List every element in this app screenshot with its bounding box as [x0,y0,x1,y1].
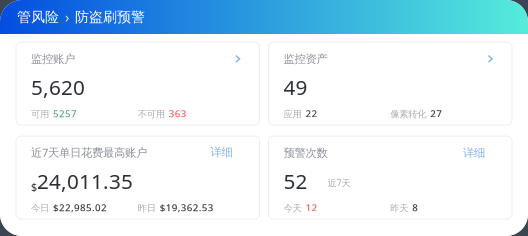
staticText: 12 [305,201,317,214]
staticText: 预警次数 [283,146,327,160]
staticText: 5257 [53,107,77,120]
staticText: 详细 [210,145,232,159]
staticText: 详细 [463,146,485,160]
button[interactable]: 管风险 [17,8,59,26]
staticText: 8 [412,201,418,214]
staticText: 今天 [283,202,301,214]
staticText: 监控资产 [283,52,327,66]
staticText: $22,985.02 [53,201,107,214]
staticText: 不可用 [138,108,165,120]
staticText: › [65,7,69,27]
staticText: 昨天 [390,202,408,214]
staticText: 52 [283,167,307,195]
staticText: 今日 [31,202,49,214]
staticText: 5,620 [31,73,85,101]
staticText: 27 [430,107,442,120]
staticText: 49 [283,73,307,101]
staticText: 363 [169,107,187,120]
staticText: 可用 [31,108,49,120]
button[interactable]: 监控资产 [268,42,512,125]
staticText: 24,011.35 [37,167,133,195]
staticText: 像素转化 [390,108,426,120]
staticText: 22 [305,107,317,120]
button[interactable]: 近7天单日花费最高账户 [16,136,259,219]
button[interactable]: 预警次数 [268,136,512,219]
staticText: 应用 [283,108,301,120]
button[interactable]: 监控账户 [16,42,259,125]
staticText: 管风险 [17,8,59,26]
staticText: 防盗刷预警 [75,8,145,26]
staticText: 监控账户 [31,52,75,66]
staticText: $ [31,179,37,194]
staticText: 昨日 [138,202,156,214]
staticText: $19,362.53 [160,201,214,214]
staticText: 近7天单日花费最高账户 [31,145,147,160]
staticText: 近7天 [327,176,350,189]
